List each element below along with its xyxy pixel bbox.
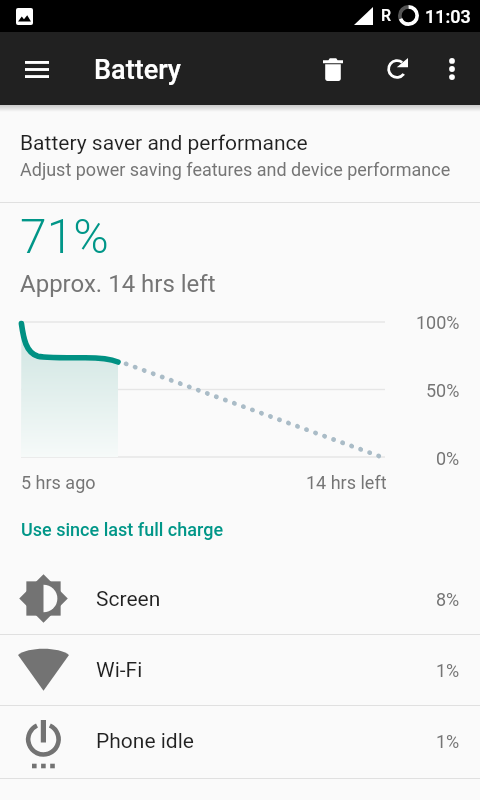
staticText: R	[381, 6, 391, 25]
button[interactable]: Screen	[0, 563, 480, 634]
staticText: Battery	[94, 54, 182, 86]
staticText: Phone idle	[96, 729, 194, 754]
button[interactable]: More options	[428, 45, 476, 93]
staticText: 100%	[416, 312, 460, 333]
staticText: Screen	[96, 587, 161, 612]
button[interactable]: Phone idle	[0, 705, 480, 776]
staticText: 0%	[436, 448, 460, 469]
button[interactable]: Refresh	[373, 45, 421, 93]
staticText: 1%	[436, 731, 460, 752]
button[interactable]: Use since last full charge	[0, 506, 480, 553]
staticText: Approx. 14 hrs left	[20, 270, 216, 298]
staticText: Adjust power saving features and device …	[20, 159, 451, 180]
staticText: 5 hrs ago	[21, 472, 96, 493]
staticText: Use since last full charge	[21, 519, 224, 540]
staticText: 71%	[20, 208, 109, 264]
staticText: 50%	[426, 380, 460, 401]
staticText: 14 hrs left	[306, 472, 387, 493]
staticText: 8%	[436, 589, 460, 610]
button[interactable]: Wi-Fi	[0, 634, 480, 705]
button[interactable]: Open navigation menu	[13, 45, 61, 93]
staticText: 1%	[436, 660, 460, 681]
staticText: 11:03	[425, 6, 471, 27]
staticText: Wi-Fi	[96, 658, 143, 683]
staticText: Battery saver and performance	[20, 131, 308, 156]
button[interactable]: Delete	[309, 45, 357, 93]
